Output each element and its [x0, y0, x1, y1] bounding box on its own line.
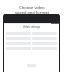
staticText: Video settings [4, 25, 59, 29]
staticText: Choose video speed and format [0, 5, 64, 15]
